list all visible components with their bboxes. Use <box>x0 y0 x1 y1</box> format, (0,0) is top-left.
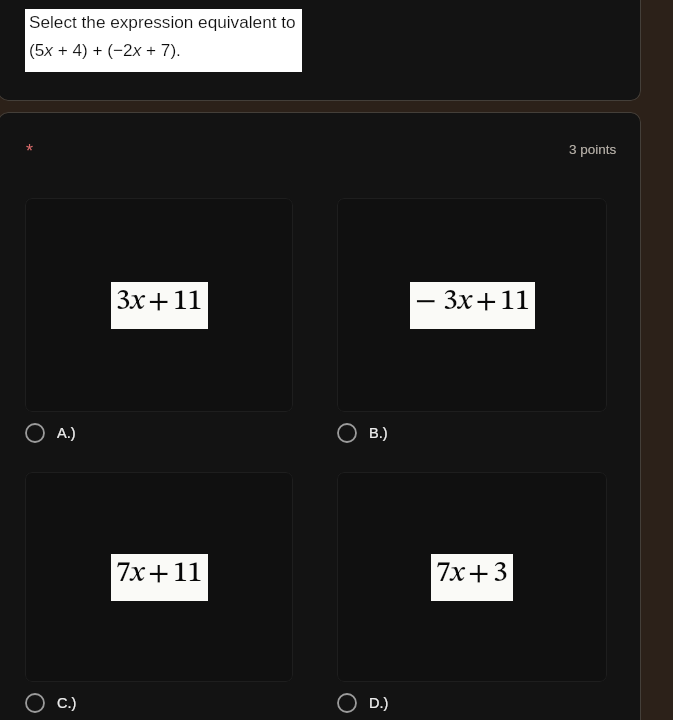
staticText: 7x + 11 <box>116 559 203 588</box>
staticText: 3x + 11 <box>116 287 203 316</box>
staticText: 3 points <box>569 142 617 157</box>
button[interactable]: A.) <box>25 420 86 446</box>
staticText: B.) <box>369 425 388 441</box>
staticText: Select the expression equivalent to (5x … <box>29 12 296 60</box>
button[interactable]: Answer option B.) <box>337 198 607 412</box>
staticText: D.) <box>369 695 389 711</box>
button[interactable]: Answer option C.) <box>25 472 293 682</box>
button[interactable]: Answer option A.) <box>25 198 293 412</box>
staticText: − 3x + 11 <box>415 287 530 316</box>
button[interactable]: Answer option D.) <box>337 472 607 682</box>
staticText: A.) <box>57 425 76 441</box>
staticText: 7x + 3 <box>436 559 508 588</box>
button[interactable]: C.) <box>25 690 87 716</box>
button[interactable]: D.) <box>337 690 399 716</box>
button[interactable]: B.) <box>337 420 398 446</box>
staticText: * <box>26 141 34 161</box>
staticText: C.) <box>57 695 77 711</box>
